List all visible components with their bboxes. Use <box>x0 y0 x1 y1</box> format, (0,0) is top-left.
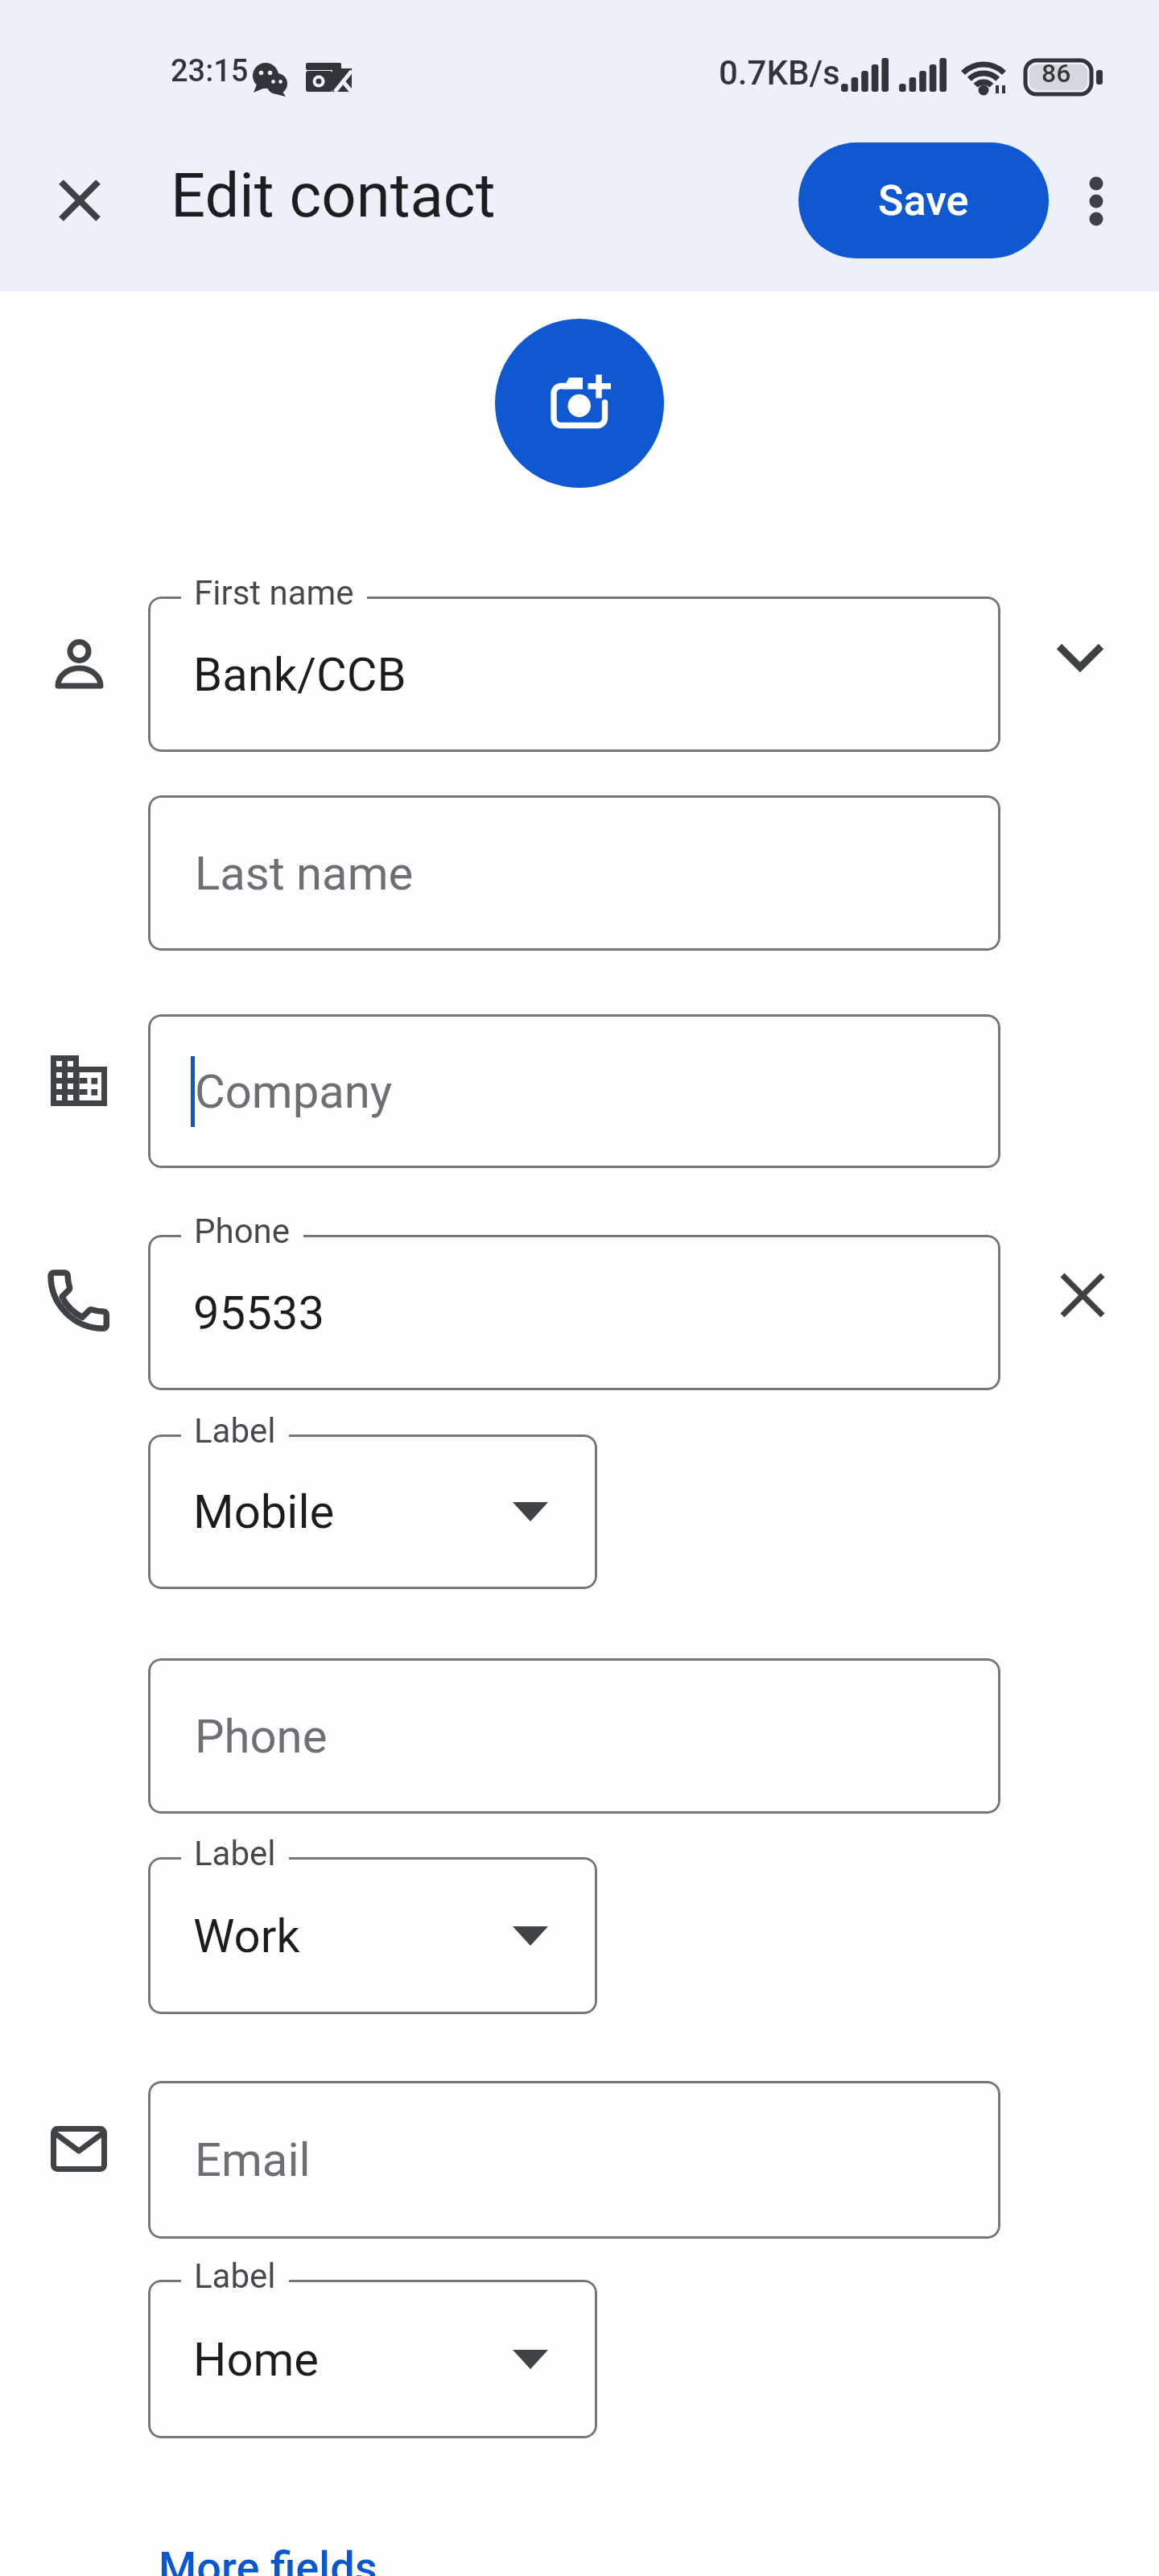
button[interactable]: Work <box>148 1857 597 2014</box>
staticText: Save <box>878 176 969 225</box>
staticText: Work <box>193 1909 300 1963</box>
staticText: Edit contact <box>171 159 496 231</box>
button[interactable]: Mobile <box>148 1435 597 1589</box>
staticText: 0.7KB/s <box>719 53 840 93</box>
staticText: Last name <box>195 846 414 901</box>
button[interactable] <box>1064 164 1128 237</box>
staticText: Label <box>194 1411 276 1451</box>
button[interactable]: Save <box>798 142 1049 258</box>
staticText: Mobile <box>193 1484 335 1539</box>
button[interactable] <box>1045 622 1116 693</box>
button[interactable]: Home <box>148 2280 597 2438</box>
staticText: Label <box>194 2256 276 2296</box>
staticText: Label <box>194 1834 276 1873</box>
staticText: 95533 <box>193 1286 324 1340</box>
button[interactable]: Company <box>148 1014 1000 1168</box>
staticText: Bank/CCB <box>193 647 406 702</box>
staticText: Phone <box>194 1212 291 1251</box>
button[interactable]: Phone <box>148 1658 1000 1814</box>
button[interactable]: More fields <box>159 2542 377 2576</box>
staticText: More fields <box>159 2542 377 2576</box>
button[interactable]: Bank/CCB <box>148 597 1000 752</box>
button[interactable]: Email <box>148 2081 1000 2239</box>
button[interactable] <box>495 319 664 488</box>
button[interactable] <box>44 165 115 236</box>
staticText: 23:15 <box>171 53 249 89</box>
button[interactable] <box>1047 1260 1118 1331</box>
staticText: Home <box>193 2332 320 2387</box>
staticText: Company <box>195 1064 393 1119</box>
staticText: First name <box>194 573 354 613</box>
button[interactable]: Last name <box>148 795 1000 951</box>
staticText: Email <box>195 2132 311 2187</box>
staticText: Phone <box>195 1709 328 1764</box>
button[interactable]: 95533 <box>148 1235 1000 1390</box>
staticText: 86 <box>1041 58 1071 89</box>
